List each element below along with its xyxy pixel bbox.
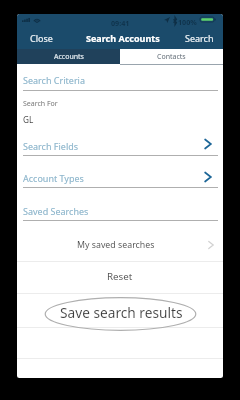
staticText: Search: [185, 32, 214, 44]
staticText: Search For: [23, 99, 58, 109]
button[interactable]: [17, 262, 223, 293]
button[interactable]: Accounts: [17, 49, 120, 64]
staticText: Saved Searches: [23, 205, 89, 217]
staticText: My saved searches: [77, 239, 155, 251]
staticText: Search Accounts: [86, 32, 160, 44]
staticText: Close: [30, 32, 53, 44]
staticText: Search Criteria: [23, 74, 85, 86]
staticText: GL: [23, 114, 34, 125]
button[interactable]: [17, 294, 223, 327]
staticText: Search Fields: [23, 140, 79, 152]
staticText: Reset: [107, 270, 133, 283]
staticText: 09:41: [111, 18, 130, 28]
button[interactable]: [17, 156, 223, 187]
staticText: Contacts: [157, 52, 186, 62]
other: Signal strength: [22, 18, 30, 22]
other: Location: [164, 17, 170, 23]
staticText: Accounts: [54, 52, 84, 62]
staticText: Save search results: [60, 303, 183, 322]
other: Battery full: [200, 17, 216, 22]
button[interactable]: [17, 64, 223, 90]
button[interactable]: Close: [30, 32, 53, 44]
button[interactable]: [17, 221, 223, 261]
other: Bluetooth: [173, 17, 177, 25]
button[interactable]: [17, 91, 223, 155]
button[interactable]: Search: [185, 32, 214, 44]
button[interactable]: Contacts: [120, 49, 223, 64]
other: Wi-Fi: [33, 17, 41, 23]
staticText: Account Types: [23, 172, 84, 184]
staticText: 100%: [178, 17, 197, 27]
